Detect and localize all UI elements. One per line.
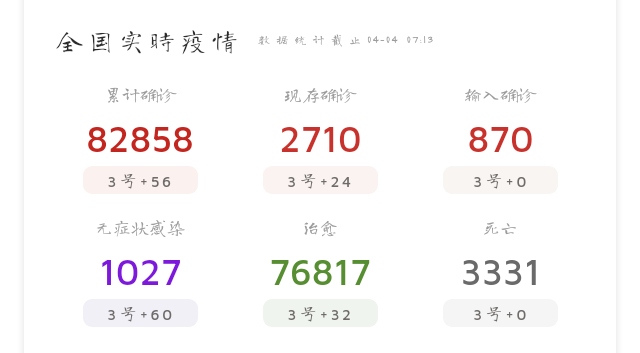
button[interactable]: 无症状感染 xyxy=(50,218,230,327)
button[interactable]: 输入确诊 xyxy=(410,85,590,194)
staticText: 1027 xyxy=(99,250,182,292)
staticText: 输入确诊 xyxy=(464,85,536,103)
staticText: 2710 xyxy=(279,117,362,159)
staticText: 3号+0 xyxy=(473,303,529,323)
staticText: 3331 xyxy=(460,250,541,292)
button[interactable]: 现存确诊 xyxy=(230,85,410,194)
staticText: 82858 xyxy=(86,117,194,159)
staticText: 治愈 xyxy=(302,218,338,236)
staticText: 死亡 xyxy=(482,218,518,236)
button[interactable]: 全国实时疫情 xyxy=(56,27,243,53)
button[interactable]: 死亡 xyxy=(410,218,590,327)
staticText: 3号+32 xyxy=(287,303,354,323)
staticText: 累计确诊 xyxy=(104,85,176,103)
staticText: 3号+0 xyxy=(473,170,529,190)
button[interactable]: 累计确诊 xyxy=(50,85,230,194)
staticText: 3号+56 xyxy=(107,170,174,190)
staticText: 现存确诊 xyxy=(284,85,356,103)
button[interactable]: 治愈 xyxy=(230,218,410,327)
staticText: 无症状感染 xyxy=(95,218,185,236)
staticText: 3号+60 xyxy=(107,303,175,323)
staticText: 870 xyxy=(467,117,534,159)
staticText: 76817 xyxy=(269,250,371,292)
staticText: 数据统计截止04-04 07:13 xyxy=(258,33,435,46)
staticText: 3号+24 xyxy=(287,170,354,190)
